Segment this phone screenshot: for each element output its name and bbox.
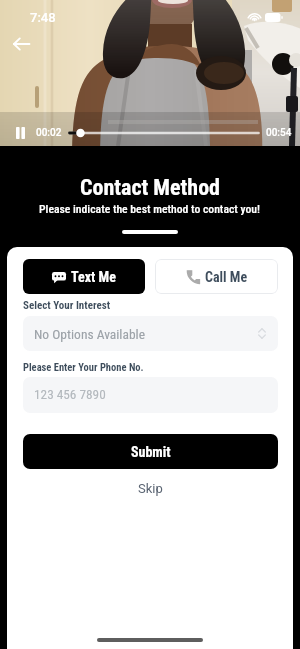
staticText: 7:48 — [30, 10, 56, 25]
button[interactable]: Text Me — [23, 259, 145, 294]
button[interactable]: Submit — [23, 434, 278, 469]
staticText: 00:02 — [36, 127, 62, 139]
staticText: Select Your Interest — [23, 299, 111, 312]
staticText: Please Enter Your Phone No. — [23, 361, 144, 373]
button[interactable]: Pause — [9, 122, 31, 144]
staticText: Call Me — [205, 269, 248, 285]
staticText: Skip — [138, 481, 163, 496]
button[interactable]: Skip — [130, 478, 171, 499]
button[interactable]: 123 456 7890 — [23, 377, 278, 413]
button[interactable]: No Options Available — [23, 316, 278, 351]
staticText: 00:54 — [266, 127, 292, 139]
staticText: Submit — [131, 444, 171, 460]
button[interactable]: Call Me — [155, 259, 278, 294]
staticText: No Options Available — [34, 326, 146, 342]
staticText: 123 456 7890 — [34, 387, 106, 403]
staticText: Text Me — [71, 269, 116, 285]
staticText: Contact Method — [80, 175, 220, 201]
button[interactable]: Back — [4, 27, 38, 61]
staticText: Please indicate the best method to conta… — [39, 202, 261, 216]
